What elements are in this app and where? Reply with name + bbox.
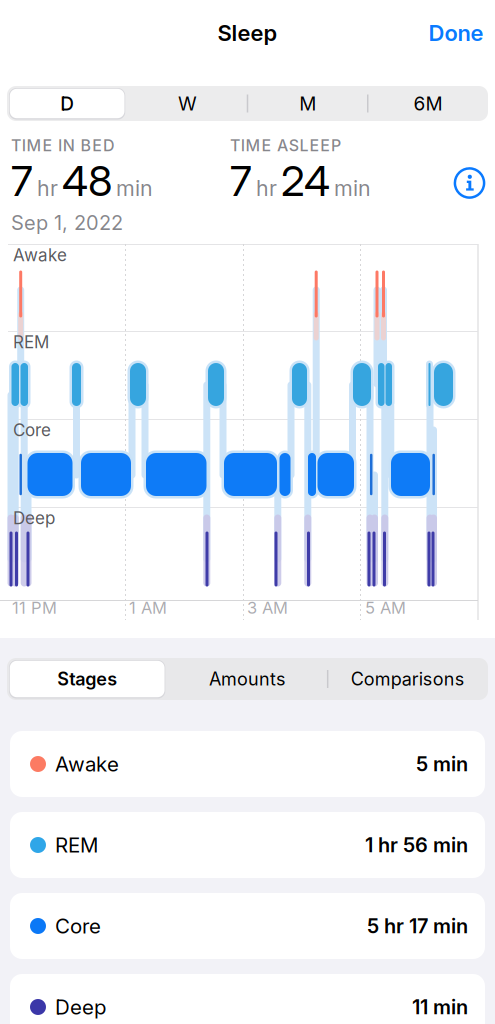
staticText: Awake	[55, 752, 119, 776]
staticText: Awake	[13, 245, 67, 265]
staticText: Done	[428, 20, 483, 46]
staticText: TIME IN BED	[11, 136, 115, 155]
staticText: Stages	[57, 668, 117, 689]
staticText: Core	[55, 914, 101, 938]
staticText: Deep	[55, 995, 106, 1019]
button[interactable]: More information	[454, 168, 484, 198]
staticText: 3 AM	[247, 598, 288, 617]
staticText: Sep 1, 2022	[11, 211, 123, 234]
staticText: 1 AM	[129, 598, 167, 617]
staticText: 6M	[413, 92, 442, 115]
button[interactable]: Core	[10, 893, 485, 959]
staticText: REM	[55, 833, 98, 857]
staticText: 7	[230, 156, 252, 205]
staticText: Amounts	[209, 668, 286, 689]
staticText: REM	[13, 332, 49, 352]
staticText: Core	[13, 420, 51, 440]
staticText: 7	[11, 156, 33, 205]
staticText: Comparisons	[351, 668, 465, 689]
staticText: 11 PM	[12, 598, 57, 617]
staticText: 5 AM	[365, 598, 406, 617]
staticText: min	[334, 175, 371, 201]
staticText: W	[178, 92, 197, 115]
staticText: 48	[62, 156, 112, 205]
staticText: hr	[256, 175, 277, 201]
button[interactable]: REM	[10, 812, 485, 878]
button[interactable]: Deep	[10, 974, 485, 1024]
staticText: 11 min	[412, 995, 468, 1019]
staticText: hr	[37, 175, 58, 201]
staticText: min	[116, 175, 153, 201]
button[interactable]: Awake	[10, 731, 485, 797]
staticText: TIME ASLEEP	[230, 136, 341, 155]
staticText: D	[60, 92, 74, 115]
staticText: 5 hr 17 min	[367, 914, 468, 938]
staticText: M	[299, 92, 316, 115]
staticText: Deep	[13, 508, 55, 528]
staticText: Sleep	[217, 20, 277, 46]
staticText: 5 min	[416, 752, 468, 776]
staticText: 1 hr 56 min	[365, 833, 468, 857]
staticText: 24	[281, 156, 330, 205]
